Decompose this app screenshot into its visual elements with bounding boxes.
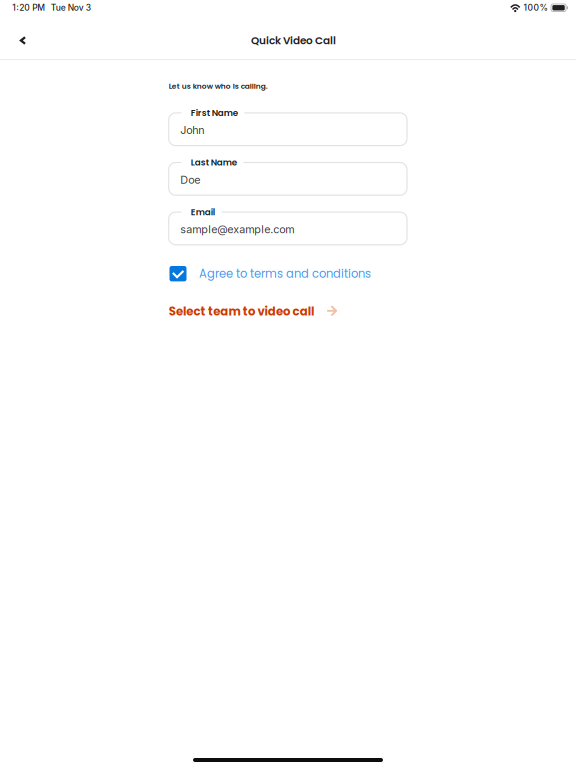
staticText: Doe [180,173,200,186]
staticText: Let us know who is calling. [169,81,268,91]
staticText: Select team to video call [169,303,314,320]
staticText: 1:20 PM [12,3,45,13]
staticText: 100% [523,3,547,13]
staticText: Email [191,206,215,218]
button[interactable]: Agree to terms and conditions [169,264,408,283]
staticText: sample@example.com [180,223,294,236]
staticText: Last Name [191,156,237,169]
staticText: John [180,124,204,137]
button[interactable]: John [169,113,407,146]
staticText: First Name [191,107,238,119]
staticText: Agree to terms and conditions [199,266,371,282]
staticText: Tue Nov 3 [51,3,91,13]
button[interactable]: sample@example.com [169,212,407,245]
button[interactable]: Select team to video call [169,303,407,319]
staticText: Quick Video Call [251,33,336,48]
button[interactable]: Back [10,25,36,55]
button[interactable]: Doe [169,162,407,195]
